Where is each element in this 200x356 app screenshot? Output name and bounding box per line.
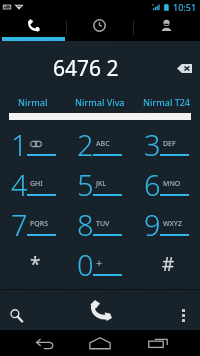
staticText: # <box>162 251 175 277</box>
staticText: 3 <box>144 125 160 164</box>
staticText: 0 <box>77 245 93 284</box>
button[interactable]: 6 <box>133 165 200 205</box>
button[interactable]: Recent apps <box>140 330 175 356</box>
button[interactable]: Call log tab <box>66 14 133 41</box>
staticText: Nirmal T24 <box>143 96 191 108</box>
button[interactable]: Nirmal Viva <box>66 90 133 110</box>
button[interactable]: Call <box>70 290 130 331</box>
button[interactable]: Contacts tab <box>133 14 200 41</box>
staticText: 8 <box>77 205 93 244</box>
button[interactable]: 9 <box>133 205 200 245</box>
staticText: DEF <box>163 139 176 149</box>
button[interactable]: Keypad tab <box>0 14 66 41</box>
button[interactable]: Home <box>82 330 117 356</box>
button[interactable]: Search <box>0 295 44 336</box>
staticText: JKL <box>96 179 107 189</box>
staticText: MNO <box>163 179 181 189</box>
staticText: ABC <box>96 139 110 149</box>
staticText: Nirmal <box>18 96 48 108</box>
button[interactable]: 8 <box>66 205 133 245</box>
staticText: Nirmal Viva <box>75 96 125 108</box>
button[interactable]: Nirmal T24 <box>133 90 200 110</box>
staticText: 6 <box>144 165 160 204</box>
staticText: * <box>30 251 41 277</box>
staticText: WXYZ <box>163 219 182 229</box>
button[interactable]: Backspace <box>171 55 197 81</box>
button[interactable]: * <box>0 245 66 285</box>
staticText: 2 <box>77 125 93 164</box>
staticText: GHI <box>30 179 43 189</box>
staticText: 5 <box>77 165 93 204</box>
staticText: 10:51 <box>173 1 197 13</box>
button[interactable]: 4 <box>0 165 66 205</box>
button[interactable]: 3 <box>133 125 200 165</box>
button[interactable]: 5 <box>66 165 133 205</box>
button[interactable]: More options <box>168 295 200 336</box>
staticText: 7 <box>11 205 27 244</box>
button[interactable]: 2 <box>66 125 133 165</box>
staticText: 4 <box>11 165 27 204</box>
staticText: PQRS <box>30 219 49 229</box>
button[interactable]: Back <box>27 330 62 356</box>
button[interactable]: 0 <box>66 245 133 285</box>
button[interactable]: Nirmal <box>0 90 66 110</box>
button[interactable]: # <box>133 245 200 285</box>
staticText: + <box>96 255 103 270</box>
button[interactable]: 7 <box>0 205 66 245</box>
staticText: TUV <box>96 219 110 229</box>
button[interactable]: 1 <box>0 125 66 165</box>
staticText: 9 <box>144 205 160 244</box>
staticText: 6476 2 <box>53 54 119 83</box>
staticText: 1 <box>11 125 27 164</box>
